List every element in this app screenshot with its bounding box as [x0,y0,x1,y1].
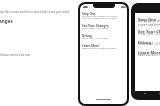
staticText: Step One [138,17,157,22]
staticText: Read the docs to discover what to do nex… [138,53,160,57]
staticText: See Your Changes [138,29,160,34]
staticText: Press Cmd + R to reload [82,26,119,29]
staticText: See Your Changes [82,24,109,28]
staticText: Debug [82,34,92,38]
staticText: Press Cmd + R to reload [138,32,160,36]
staticText: Press Cmd + D for menu [138,42,160,46]
staticText: Debug [138,40,151,45]
staticText: Learn More [82,44,100,48]
staticText: Edit app.js to change this screen and th… [138,19,160,27]
staticText: Read the docs to discover what to do nex… [82,46,119,49]
staticText: Discover what to do next [0,53,31,57]
staticText: Press Cmd + D for menu [82,36,119,39]
staticText: Learn More [138,50,160,55]
staticText: nge this screen and then come back to se… [0,10,70,14]
staticText: Edit app.js to change this screen and th… [82,14,119,20]
staticText: Step One [82,12,96,16]
staticText: anges [0,18,13,24]
